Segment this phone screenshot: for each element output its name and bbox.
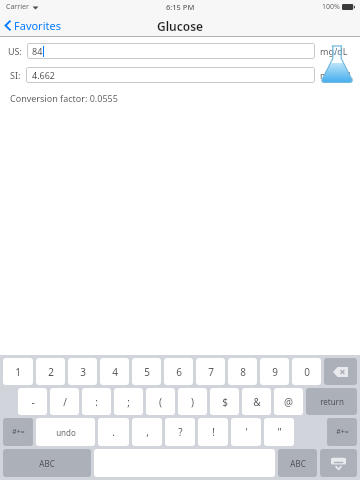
staticText: 84: [32, 45, 43, 57]
staticText: ': [245, 425, 248, 439]
button[interactable]: -: [18, 388, 47, 415]
staticText: Carrier: [6, 2, 29, 12]
button[interactable]: 5: [132, 358, 161, 385]
staticText: #+=: [12, 427, 25, 437]
button[interactable]: $: [210, 388, 239, 415]
staticText: #+=: [336, 427, 349, 437]
button[interactable]: 4: [100, 358, 129, 385]
staticText: 8: [240, 365, 246, 379]
button[interactable]: ;: [114, 388, 143, 415]
button[interactable]: @: [274, 388, 303, 415]
staticText: mg/dL: [320, 45, 348, 57]
button[interactable]: ": [264, 418, 294, 446]
button[interactable]: 3: [68, 358, 97, 385]
staticText: ?: [178, 425, 183, 439]
button[interactable]: :: [82, 388, 111, 415]
button[interactable]: &: [242, 388, 271, 415]
button[interactable]: Favorites: [0, 15, 69, 36]
staticText: ): [191, 395, 194, 409]
button[interactable]: #+=: [327, 418, 357, 446]
staticText: return: [320, 396, 344, 407]
staticText: US:: [8, 45, 22, 57]
staticText: ;: [127, 395, 130, 409]
button[interactable]: Delete: [324, 358, 357, 385]
staticText: 3: [80, 365, 86, 379]
staticText: 0: [304, 365, 310, 379]
button[interactable]: 4.662: [26, 67, 315, 83]
button[interactable]: ?: [165, 418, 195, 446]
staticText: @: [284, 395, 293, 409]
staticText: Glucose: [157, 18, 204, 34]
staticText: !: [212, 425, 215, 439]
staticText: Conversion factor: 0.0555: [10, 92, 118, 104]
staticText: 4: [112, 365, 118, 379]
staticText: 9: [272, 365, 278, 379]
button[interactable]: ): [178, 388, 207, 415]
staticText: undo: [56, 427, 76, 438]
button[interactable]: 0: [292, 358, 321, 385]
button[interactable]: undo: [36, 418, 95, 446]
button[interactable]: 8: [228, 358, 257, 385]
staticText: ABC: [39, 458, 55, 469]
button[interactable]: 6: [164, 358, 193, 385]
button[interactable]: #+=: [3, 418, 33, 446]
staticText: ": [277, 425, 282, 439]
button[interactable]: ,: [132, 418, 162, 446]
staticText: SI:: [10, 69, 21, 81]
button[interactable]: return: [306, 388, 357, 415]
staticText: $: [222, 395, 228, 409]
staticText: ,: [146, 425, 149, 439]
staticText: -: [31, 395, 35, 409]
button[interactable]: 2: [36, 358, 65, 385]
staticText: 4.662: [32, 69, 56, 81]
other: Glucose flask: [318, 40, 356, 86]
staticText: 6: [176, 365, 182, 379]
staticText: /: [63, 395, 67, 409]
staticText: 2: [48, 365, 54, 379]
button[interactable]: !: [198, 418, 228, 446]
staticText: (: [159, 395, 162, 409]
staticText: 7: [208, 365, 214, 379]
staticText: 100%: [322, 2, 340, 12]
button[interactable]: .: [98, 418, 129, 446]
button[interactable]: ': [231, 418, 261, 446]
button[interactable]: Hide keyboard: [320, 449, 357, 477]
button[interactable]: ABC: [3, 449, 91, 477]
button[interactable]: (: [146, 388, 175, 415]
button[interactable]: 84: [27, 43, 315, 59]
staticText: &: [253, 395, 261, 409]
staticText: 1: [15, 365, 21, 379]
staticText: mmol/L: [320, 69, 353, 81]
staticText: Favorites: [14, 18, 61, 33]
staticText: 6:15 PM: [166, 2, 195, 12]
button[interactable]: 9: [260, 358, 289, 385]
staticText: .: [112, 425, 115, 439]
button[interactable]: 7: [196, 358, 225, 385]
button[interactable]: /: [50, 388, 79, 415]
staticText: 5: [144, 365, 150, 379]
button[interactable]: ABC: [278, 449, 317, 477]
staticText: ABC: [290, 458, 306, 469]
button[interactable]: 1: [3, 358, 33, 385]
staticText: :: [95, 395, 98, 409]
